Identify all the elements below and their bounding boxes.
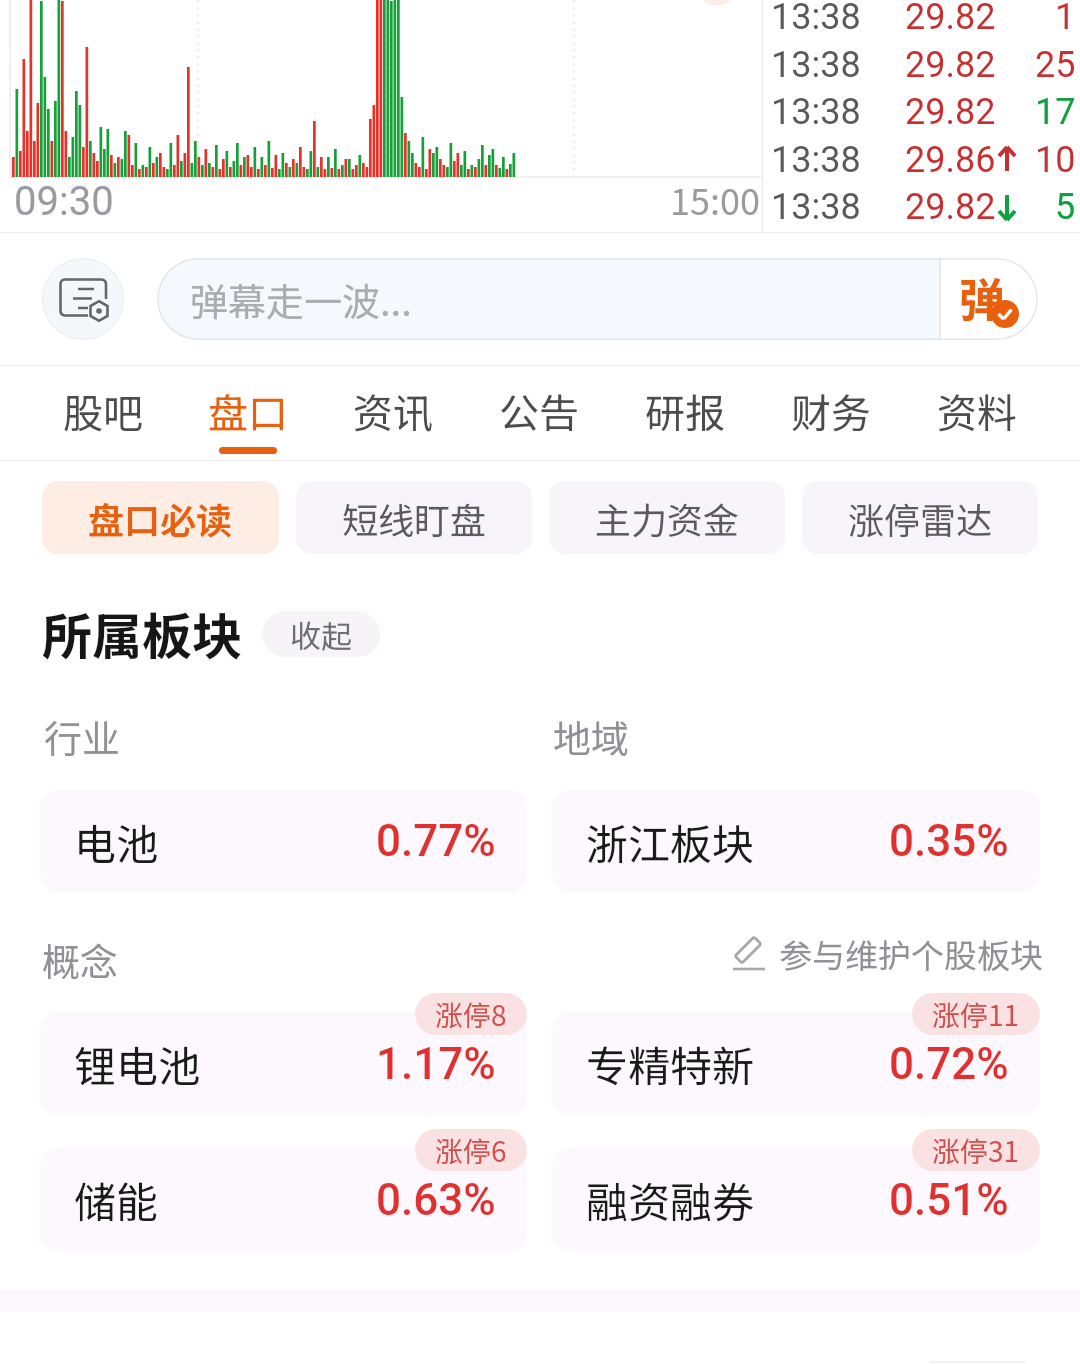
- button[interactable]: 公告: [466, 365, 612, 460]
- staticText: 0.72%: [889, 1038, 1009, 1090]
- button[interactable]: 研报: [612, 365, 758, 460]
- staticText: 0.77%: [376, 815, 496, 867]
- button[interactable]: 锂电池: [40, 1012, 527, 1115]
- staticText: 行业: [44, 709, 121, 764]
- staticText: 概念: [42, 932, 119, 987]
- staticText: 资料: [937, 382, 1017, 440]
- staticText: 参与维护个股板块: [779, 930, 1043, 978]
- staticText: 13:38: [771, 44, 861, 86]
- staticText: 涨停8: [435, 994, 507, 1035]
- staticText: 29.82: [905, 0, 996, 38]
- staticText: 短线盯盘: [342, 492, 487, 544]
- button[interactable]: Danmaku input: [157, 258, 940, 340]
- staticText: 资讯: [353, 382, 433, 440]
- button[interactable]: 浙江板块: [552, 790, 1040, 892]
- staticText: 15:00: [670, 173, 760, 225]
- staticText: 5: [1055, 186, 1076, 228]
- button[interactable]: 收起: [262, 611, 380, 657]
- staticText: 0.51%: [889, 1174, 1009, 1226]
- button[interactable]: 盘口: [175, 365, 320, 460]
- staticText: 10: [1035, 139, 1076, 181]
- staticText: 融资融券: [586, 1169, 755, 1230]
- button[interactable]: 主力资金: [549, 481, 785, 554]
- staticText: 0.63%: [376, 1174, 496, 1226]
- staticText: 13:38: [771, 186, 861, 228]
- staticText: 浙江板块: [586, 811, 755, 872]
- button[interactable]: 所属板块: [42, 597, 242, 669]
- staticText: 25: [1035, 44, 1076, 86]
- button[interactable]: 股吧: [30, 365, 175, 460]
- staticText: 盘口必读: [88, 492, 233, 544]
- button[interactable]: 专精特新: [552, 1012, 1040, 1115]
- staticText: 储能: [74, 1169, 159, 1230]
- button[interactable]: 盘口必读: [42, 481, 279, 554]
- staticText: 涨停31: [932, 1130, 1020, 1171]
- button[interactable]: 资料: [904, 365, 1050, 460]
- staticText: 财务: [791, 382, 871, 440]
- button[interactable]: 储能: [40, 1148, 527, 1251]
- button[interactable]: 参与维护个股板块: [731, 930, 1043, 978]
- staticText: 弹幕走一波...: [190, 272, 412, 327]
- staticText: 锂电池: [74, 1033, 201, 1094]
- staticText: 涨停11: [932, 994, 1020, 1035]
- staticText: 股吧: [63, 382, 143, 440]
- staticText: 1.17%: [376, 1038, 496, 1090]
- staticText: 29.82: [905, 91, 996, 133]
- staticText: 29.82: [905, 44, 996, 86]
- staticText: 29.86: [905, 139, 996, 181]
- button[interactable]: 短线盯盘: [296, 481, 532, 554]
- staticText: 公告: [499, 382, 579, 440]
- staticText: 17: [1035, 91, 1076, 133]
- button[interactable]: Stock report: [42, 258, 124, 340]
- staticText: 收起: [290, 612, 352, 657]
- staticText: 29.82: [905, 186, 996, 228]
- staticText: 涨停雷达: [848, 492, 993, 544]
- button[interactable]: Send danmaku: [940, 258, 1038, 340]
- staticText: 主力资金: [595, 492, 740, 544]
- staticText: 研报: [645, 382, 725, 440]
- button[interactable]: 电池: [40, 790, 527, 892]
- staticText: 专精特新: [586, 1033, 755, 1094]
- staticText: 13:38: [771, 139, 861, 181]
- staticText: 0.35%: [889, 815, 1009, 867]
- button[interactable]: 财务: [758, 365, 904, 460]
- staticText: 1: [1055, 0, 1076, 38]
- staticText: 盘口: [208, 382, 288, 440]
- staticText: 13:38: [771, 0, 861, 38]
- staticText: 13:38: [771, 91, 861, 133]
- button[interactable]: 资讯: [320, 365, 466, 460]
- staticText: 地域: [553, 709, 630, 764]
- button[interactable]: 涨停雷达: [802, 481, 1038, 554]
- button[interactable]: 融资融券: [552, 1148, 1040, 1251]
- staticText: 涨停6: [435, 1130, 507, 1171]
- staticText: 弹: [959, 264, 1005, 331]
- staticText: 09:30: [14, 178, 114, 225]
- staticText: 电池: [74, 811, 159, 872]
